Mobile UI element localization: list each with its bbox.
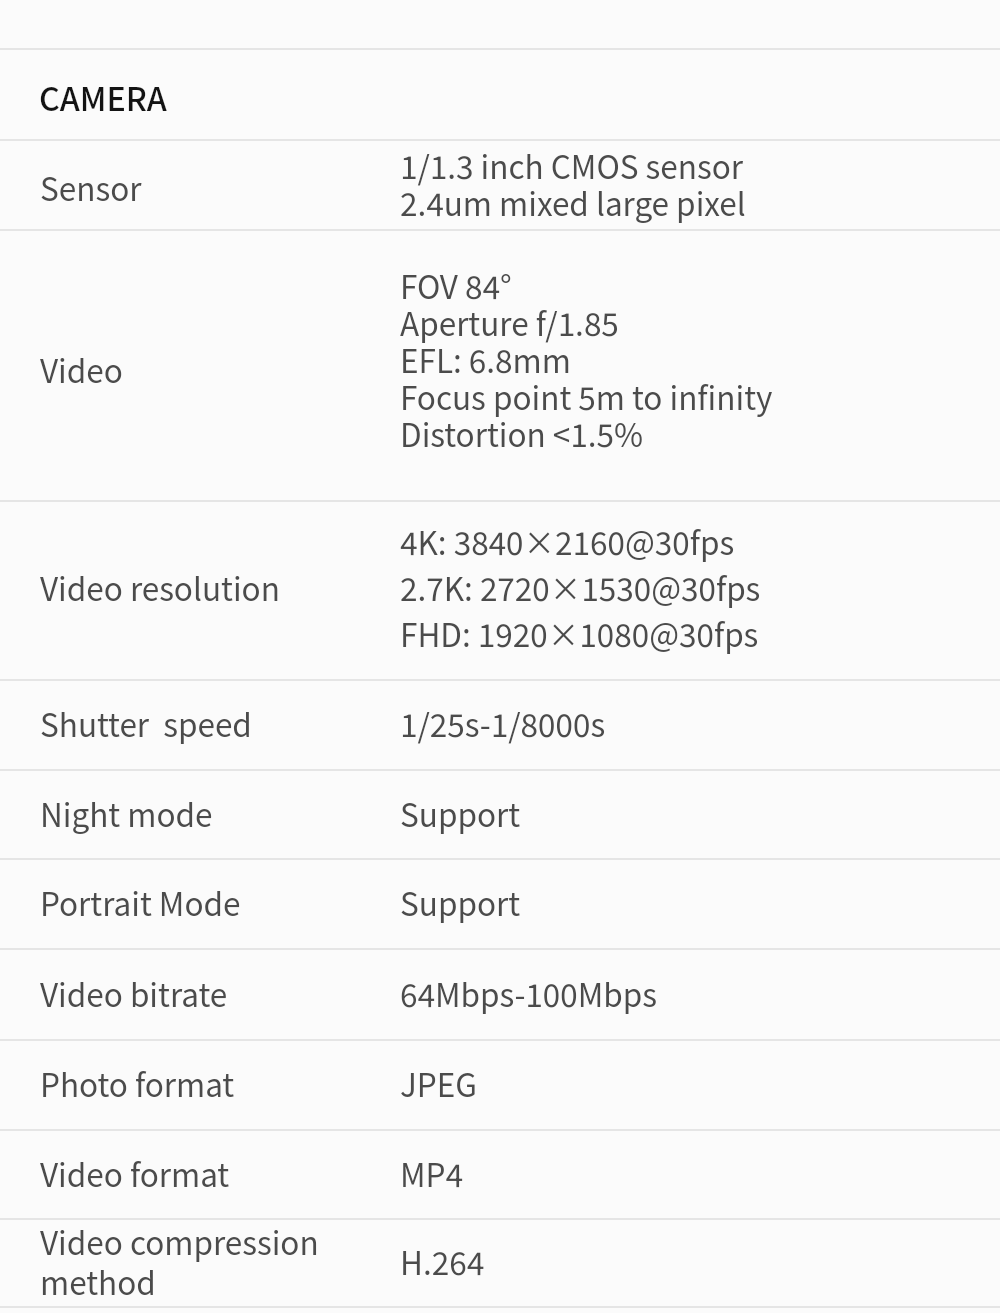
staticText: 1/1.3 inch CMOS sensor 2.4um mixed large… <box>400 149 746 223</box>
staticText: 1/25s-1/8000s <box>400 705 606 745</box>
staticText: JPEG <box>400 1065 478 1105</box>
button[interactable]: Photo format <box>0 1041 1000 1129</box>
button[interactable]: Shutter speed <box>0 681 1000 769</box>
staticText: Support <box>400 795 521 835</box>
staticText: Video resolution <box>40 569 280 609</box>
staticText: 4K: 3840×2160@30fps 2.7K: 2720×1530@30fp… <box>400 518 761 656</box>
staticText: Video <box>40 351 123 391</box>
staticText: Video format <box>40 1155 230 1195</box>
staticText: Video bitrate <box>40 975 228 1015</box>
staticText: Photo format <box>40 1065 235 1105</box>
staticText: H.264 <box>400 1243 485 1283</box>
staticText: Night mode <box>40 795 213 835</box>
staticText: Video compression method <box>40 1223 319 1303</box>
staticText: MP4 <box>400 1155 464 1195</box>
button[interactable]: Video format <box>0 1131 1000 1218</box>
staticText: Support <box>400 884 521 924</box>
button[interactable]: Video <box>0 231 1000 500</box>
staticText: FOV 84° Aperture f/1.85 EFL: 6.8mm Focus… <box>400 269 773 454</box>
staticText: Sensor <box>40 169 142 209</box>
staticText: CAMERA <box>39 74 167 121</box>
staticText: 64Mbps-100Mbps <box>400 975 657 1015</box>
button[interactable]: Video bitrate <box>0 950 1000 1039</box>
staticText: Shutter speed <box>40 705 252 745</box>
button[interactable]: Night mode <box>0 771 1000 858</box>
button[interactable]: Portrait Mode <box>0 860 1000 948</box>
button[interactable]: Video compression method <box>0 1220 1000 1306</box>
button[interactable]: Sensor <box>0 141 1000 229</box>
button[interactable]: CAMERA <box>0 50 1000 139</box>
staticText: Portrait Mode <box>40 884 241 924</box>
button[interactable]: Video resolution <box>0 502 1000 679</box>
